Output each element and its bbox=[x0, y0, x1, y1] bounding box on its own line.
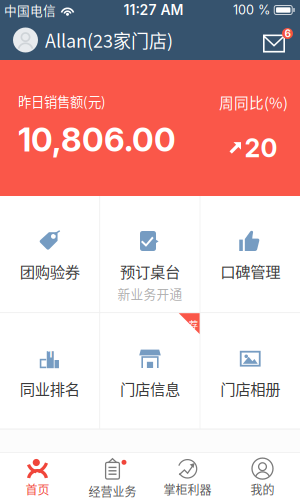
button[interactable]: 预订桌台 bbox=[100, 196, 200, 312]
staticText: 掌柜利器 bbox=[163, 481, 211, 498]
staticText: 预订桌台 bbox=[120, 260, 180, 282]
staticText: 周同比(%) bbox=[219, 92, 288, 113]
staticText: 昨日销售额(元) bbox=[18, 92, 106, 111]
button[interactable]: 团购验券 bbox=[0, 196, 99, 312]
staticText: 门店信息 bbox=[120, 377, 180, 399]
staticText: 10,806.00 bbox=[18, 120, 176, 159]
staticText: 团购验券 bbox=[20, 260, 80, 282]
staticText: 11:27 AM bbox=[123, 1, 183, 18]
button[interactable]: 门店信息 bbox=[100, 313, 200, 429]
staticText: 我的 bbox=[250, 481, 274, 498]
button[interactable]: 经营业务 bbox=[75, 453, 150, 500]
staticText: 中国电信 bbox=[4, 1, 56, 19]
button[interactable]: 口碑管理 bbox=[200, 196, 300, 312]
button[interactable]: 掌柜利器 bbox=[150, 453, 225, 500]
staticText: 荐 bbox=[189, 317, 198, 331]
button[interactable]: 首页 bbox=[0, 453, 75, 500]
button[interactable]: 门店相册 bbox=[200, 313, 300, 429]
staticText: 新业务开通 bbox=[117, 284, 182, 302]
staticText: 100 % bbox=[233, 2, 270, 18]
staticText: 同业排名 bbox=[20, 377, 80, 399]
staticText: 6 bbox=[284, 27, 290, 40]
button[interactable]: 1 bbox=[0, 313, 99, 429]
staticText: 门店相册 bbox=[220, 377, 280, 399]
staticText: 20 bbox=[244, 133, 277, 163]
button[interactable]: Allan(23家门店) bbox=[13, 23, 173, 57]
staticText: 1 bbox=[48, 347, 53, 360]
staticText: 经营业务 bbox=[88, 483, 136, 500]
button[interactable]: Messages bbox=[263, 23, 289, 57]
staticText: 首页 bbox=[25, 481, 49, 498]
staticText: 口碑管理 bbox=[220, 260, 280, 282]
button[interactable]: 我的 bbox=[225, 453, 300, 500]
staticText: Allan(23家门店) bbox=[45, 27, 173, 53]
